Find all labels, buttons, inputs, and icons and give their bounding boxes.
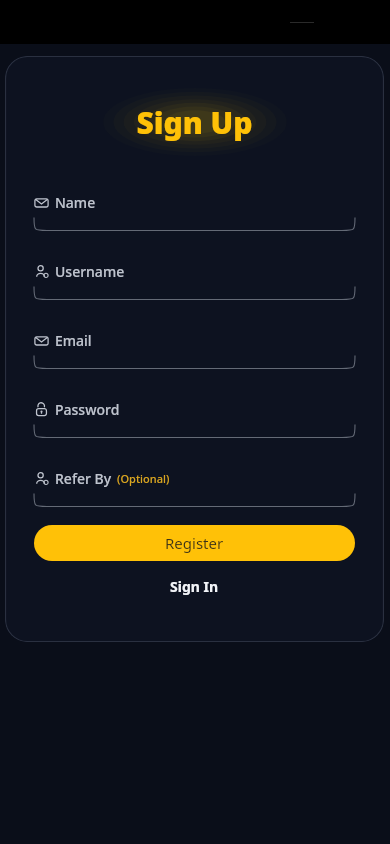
- other: Refer By: [34, 471, 49, 486]
- staticText: Email: [55, 331, 92, 350]
- staticText: Refer By: [55, 469, 112, 488]
- button[interactable]: Refer By: [34, 469, 355, 508]
- staticText: Sign Up: [136, 102, 253, 143]
- staticText: Username: [55, 262, 125, 281]
- other: Password: [34, 402, 49, 417]
- staticText: Name: [55, 193, 96, 212]
- button[interactable]: Email: [34, 331, 355, 370]
- other: Username: [34, 264, 49, 279]
- staticText: Password: [55, 400, 120, 419]
- staticText: Register: [165, 533, 224, 553]
- other: Name: [34, 195, 49, 210]
- button[interactable]: Register: [34, 525, 355, 561]
- staticText: Sign In: [170, 577, 219, 596]
- button[interactable]: Sign In: [160, 574, 229, 599]
- staticText: (Optional): [117, 471, 170, 486]
- button[interactable]: Name: [34, 193, 355, 232]
- button[interactable]: Password: [34, 400, 355, 439]
- other: Email: [34, 333, 49, 348]
- button[interactable]: Username: [34, 262, 355, 301]
